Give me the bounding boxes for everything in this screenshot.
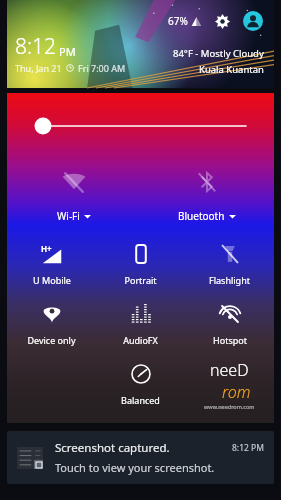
- staticText: 8:12: [15, 32, 57, 61]
- button[interactable]: Bluetooth: [140, 165, 274, 225]
- button[interactable]: Flashlight: [185, 239, 274, 289]
- staticText: Bluetooth: [178, 209, 225, 223]
- staticText: 84°F - Mostly Cloudy: [173, 47, 264, 60]
- staticText: H+: [41, 243, 52, 254]
- staticText: 8:12 PM: [232, 442, 264, 454]
- staticText: Screenshot captured.: [55, 440, 170, 456]
- staticText: Hotspot: [213, 334, 247, 346]
- staticText: Portrait: [124, 274, 157, 286]
- staticText: Flashlight: [209, 274, 250, 286]
- staticText: rom: [222, 381, 251, 403]
- staticText: 67%: [168, 14, 188, 28]
- button[interactable]: AudioFX: [96, 299, 185, 349]
- staticText: Device only: [27, 334, 76, 346]
- staticText: Touch to view your screenshot.: [55, 460, 215, 475]
- staticText: U Mobile: [33, 274, 71, 286]
- staticText: Kuala Kuantan: [199, 63, 264, 76]
- staticText: PM: [59, 44, 76, 59]
- button[interactable]: Balanced: [96, 359, 185, 409]
- staticText: Thu, Jan 21: [15, 62, 62, 74]
- button[interactable]: Device only: [7, 299, 96, 349]
- button[interactable]: Wi-Fi: [7, 165, 140, 225]
- staticText: AudioFX: [123, 334, 158, 346]
- button[interactable]: Portrait: [96, 239, 185, 289]
- staticText: neeD: [210, 359, 249, 381]
- button[interactable]: Brightness: [7, 115, 274, 137]
- button[interactable]: H+: [7, 239, 96, 289]
- button[interactable]: Settings: [212, 11, 232, 31]
- button[interactable]: User profile: [242, 10, 264, 32]
- staticText: Fri 7:00 AM: [78, 62, 126, 74]
- button[interactable]: Hotspot: [185, 299, 274, 349]
- staticText: www.needrom.com: [204, 403, 255, 410]
- staticText: Wi-Fi: [57, 209, 80, 223]
- button[interactable]: Screenshot captured.: [7, 431, 274, 484]
- staticText: Balanced: [121, 394, 160, 406]
